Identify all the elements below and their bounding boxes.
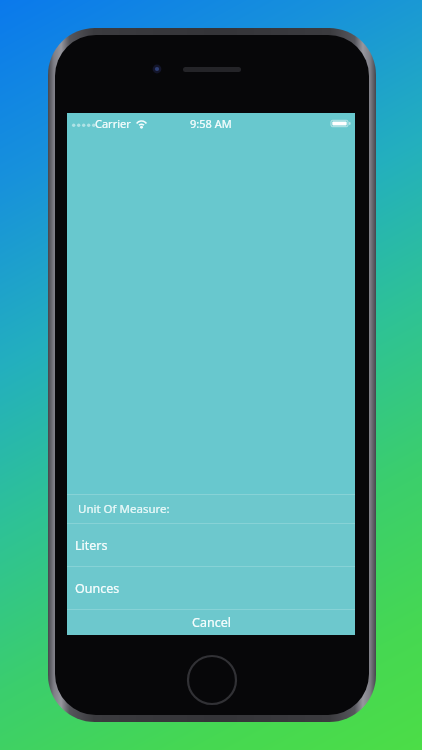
button[interactable]: Liters: [67, 524, 355, 566]
staticText: 9:58 AM: [190, 116, 232, 131]
staticText: Unit Of Measure:: [78, 501, 170, 517]
staticText: Cancel: [192, 614, 231, 631]
staticText: Liters: [75, 537, 108, 554]
staticText: Carrier: [95, 116, 131, 131]
staticText: Ounces: [75, 580, 120, 597]
button[interactable]: Ounces: [67, 567, 355, 609]
button[interactable]: Cancel: [67, 610, 355, 635]
